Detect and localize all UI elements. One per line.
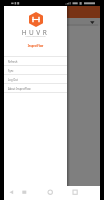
- other: Select project: [4, 18, 100, 26]
- button[interactable]: Sync: [4, 66, 67, 75]
- staticText: Sync: [8, 69, 14, 73]
- button[interactable]: About InspectFlow: [4, 84, 67, 93]
- staticText: HUVR: [4, 28, 67, 37]
- staticText: Refresh: [8, 60, 18, 64]
- button[interactable]: [4, 6, 100, 18]
- staticText: Log Out: [8, 78, 18, 82]
- staticText: ASSET PERFORMANCE: [4, 35, 67, 37]
- button[interactable]: Refresh: [4, 57, 67, 66]
- button[interactable]: Log Out: [4, 75, 67, 84]
- staticText: InspectFlow: [4, 44, 67, 48]
- staticText: About InspectFlow: [8, 87, 31, 91]
- button[interactable]: [4, 6, 100, 186]
- other: System navigation: [4, 186, 100, 200]
